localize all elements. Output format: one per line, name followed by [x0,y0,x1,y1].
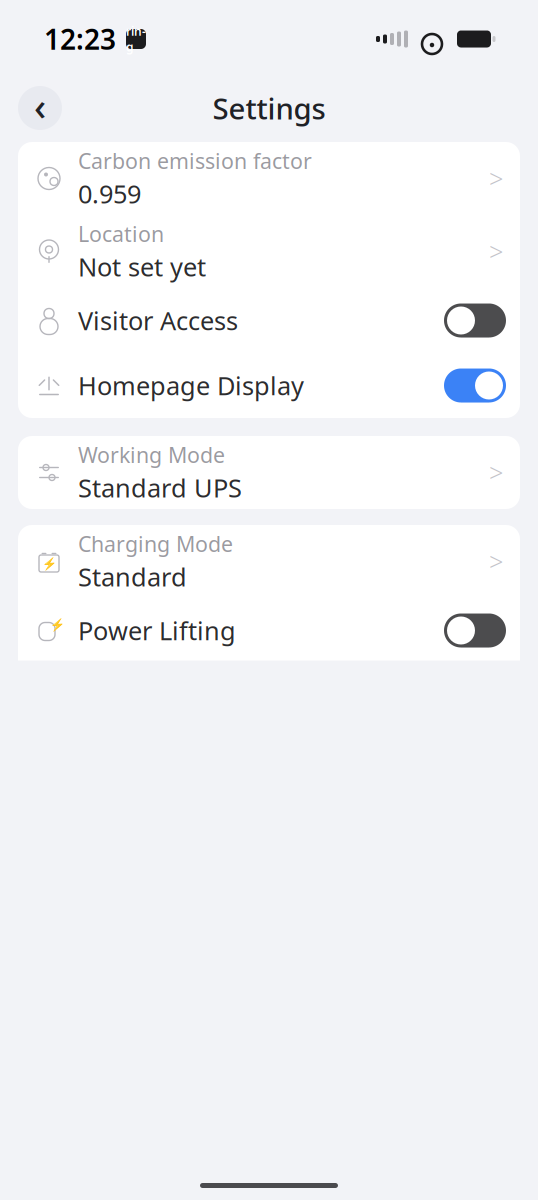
staticText: Location [78,219,164,248]
staticText: Settings [212,88,325,127]
staticText: ring [126,23,146,55]
button[interactable]: ⚡ [18,525,520,598]
button[interactable]: Visitor Access [18,288,520,353]
staticText: Standard UPS [78,471,242,504]
staticText: 0.959 [78,177,141,210]
staticText: ⚡ [49,618,64,631]
staticText: > [489,545,503,578]
staticText: Carbon emission factor [78,146,312,175]
staticText: Visitor Access [78,304,238,337]
staticText: Not set yet [78,250,206,283]
button[interactable]: Back [18,83,62,133]
staticText: 12:23 [44,20,116,58]
button[interactable]: Location [18,215,520,288]
button[interactable]: Carbon emission factor [18,142,520,215]
staticText: Working Mode [78,440,225,469]
staticText: ⚡ [41,557,56,570]
staticText: > [489,456,503,489]
staticText: > [489,162,503,195]
button[interactable]: Working Mode [18,436,520,509]
staticText: Standard [78,560,187,593]
button[interactable]: Homepage Display [18,353,520,418]
staticText: > [489,235,503,268]
staticText: Power Lifting [78,614,236,647]
staticText: Charging Mode [78,529,233,558]
staticText: ‹ [34,81,46,131]
staticText: Homepage Display [78,369,304,402]
button[interactable]: ⚡ [18,598,520,663]
